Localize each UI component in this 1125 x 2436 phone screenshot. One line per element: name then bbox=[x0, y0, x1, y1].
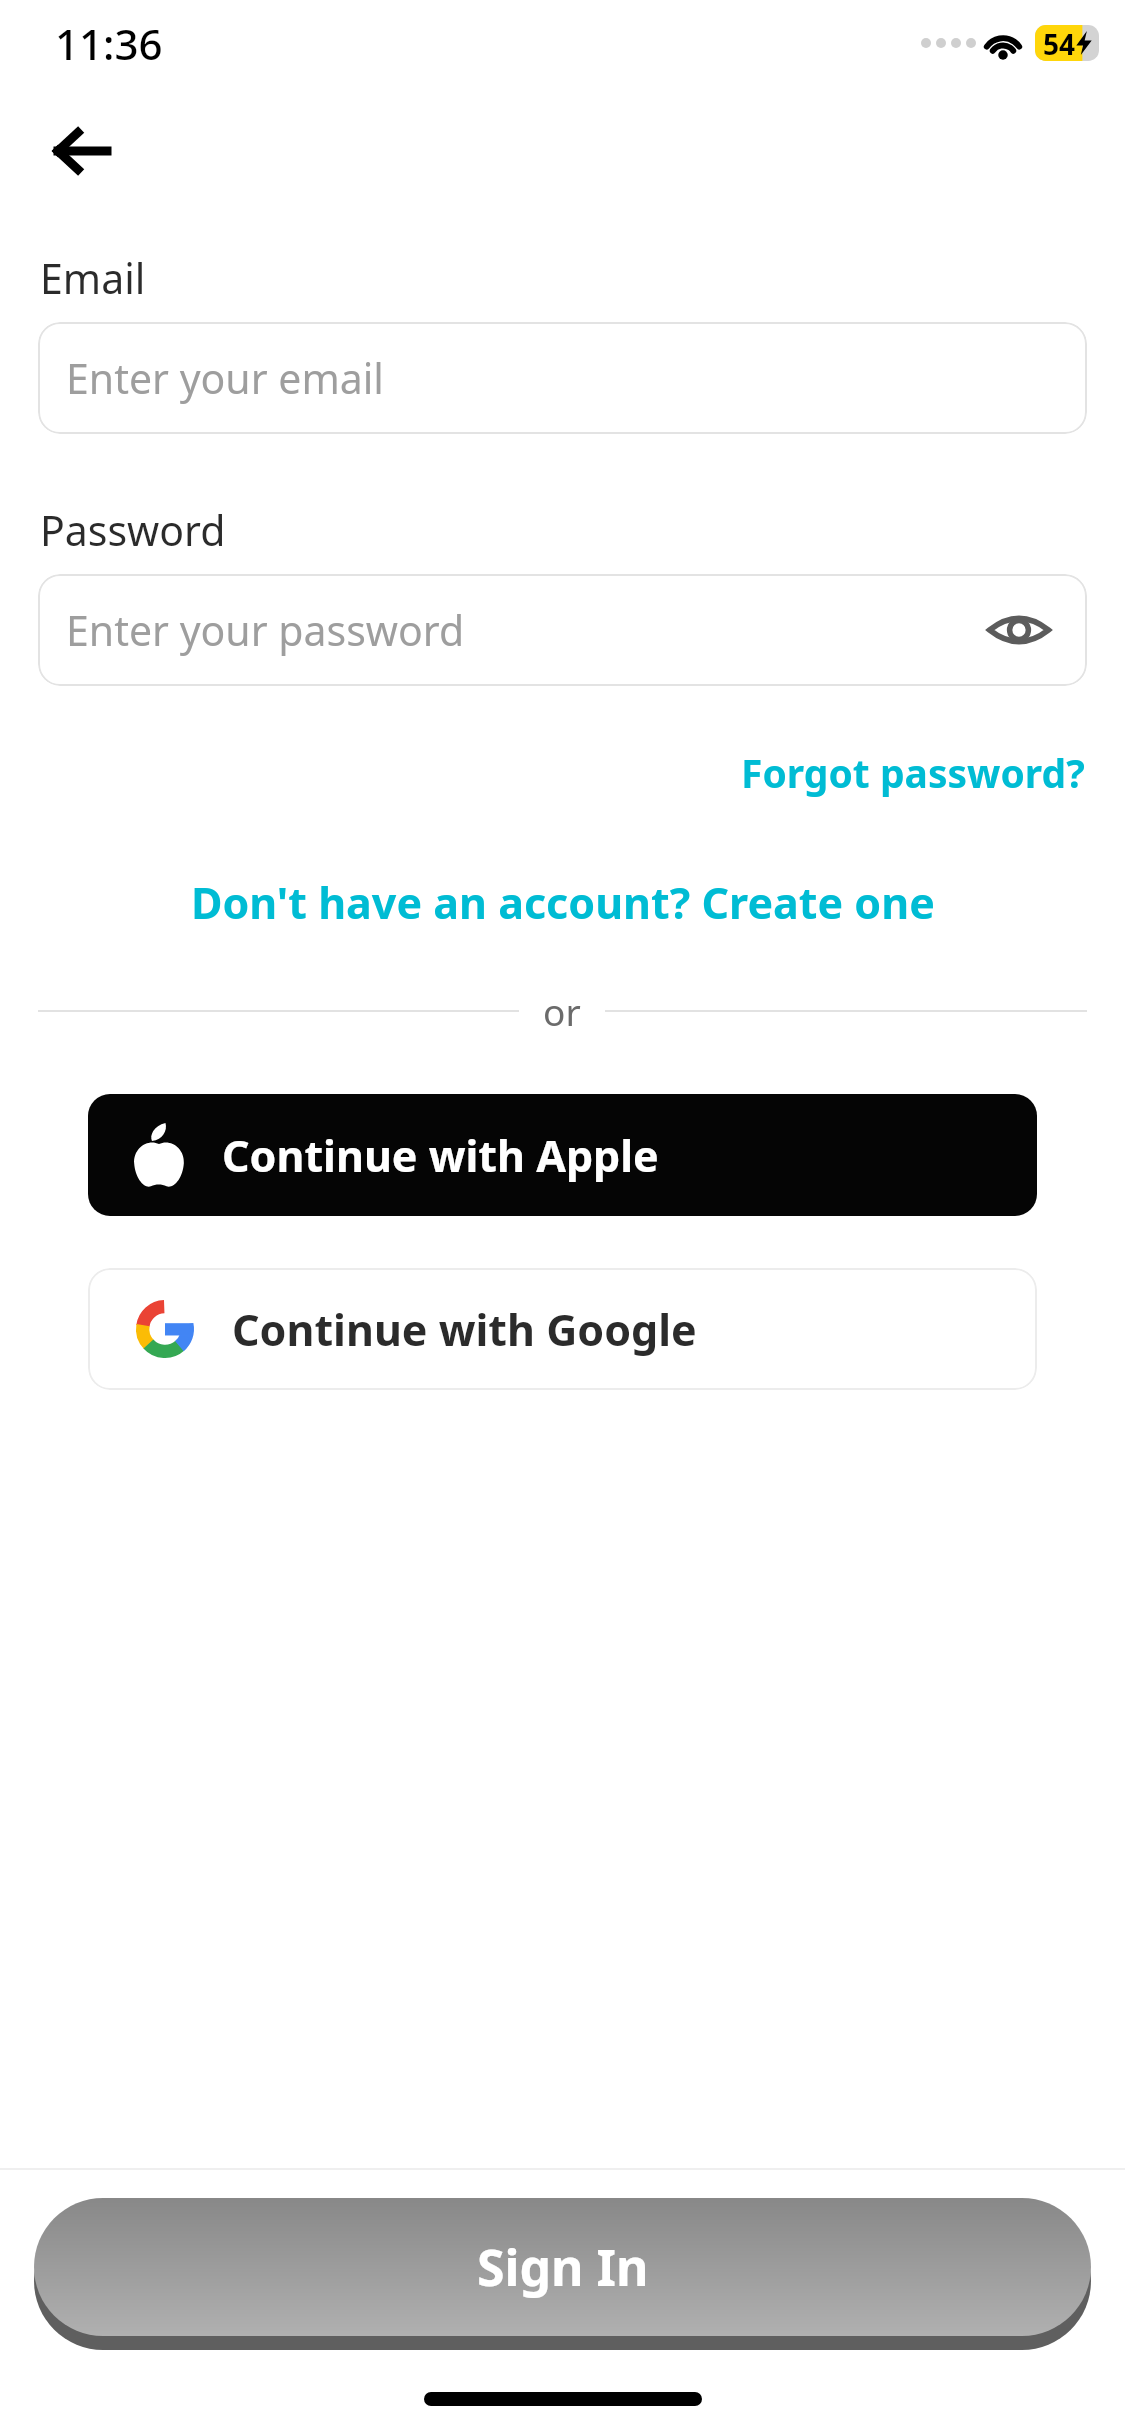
button[interactable]: Show password bbox=[981, 592, 1057, 668]
staticText: Email bbox=[40, 250, 146, 306]
button[interactable]: Enter your email bbox=[38, 322, 1087, 434]
button[interactable]: Forgot password? bbox=[0, 734, 1125, 811]
button[interactable]: Enter your password bbox=[38, 574, 1087, 686]
staticText: Continue with Google bbox=[232, 1300, 697, 1359]
staticText: Continue with Apple bbox=[222, 1126, 659, 1185]
staticText: Forgot password? bbox=[741, 746, 1085, 799]
staticText: Sign In bbox=[477, 2233, 649, 2301]
staticText: Enter your password bbox=[66, 602, 465, 658]
staticText: 11:36 bbox=[55, 15, 163, 72]
staticText: or bbox=[543, 986, 581, 1036]
button[interactable]: Back bbox=[30, 100, 132, 202]
button[interactable]: Continue with Google bbox=[88, 1268, 1037, 1390]
staticText: Don't have an account? Create one bbox=[191, 873, 935, 932]
button[interactable]: Don't have an account? Create one bbox=[0, 861, 1125, 944]
staticText: Enter your email bbox=[66, 350, 384, 406]
staticText: Password bbox=[40, 502, 226, 558]
button[interactable]: Sign In bbox=[34, 2198, 1091, 2336]
staticText: 54 bbox=[1043, 25, 1076, 61]
button[interactable]: Continue with Apple bbox=[88, 1094, 1037, 1216]
